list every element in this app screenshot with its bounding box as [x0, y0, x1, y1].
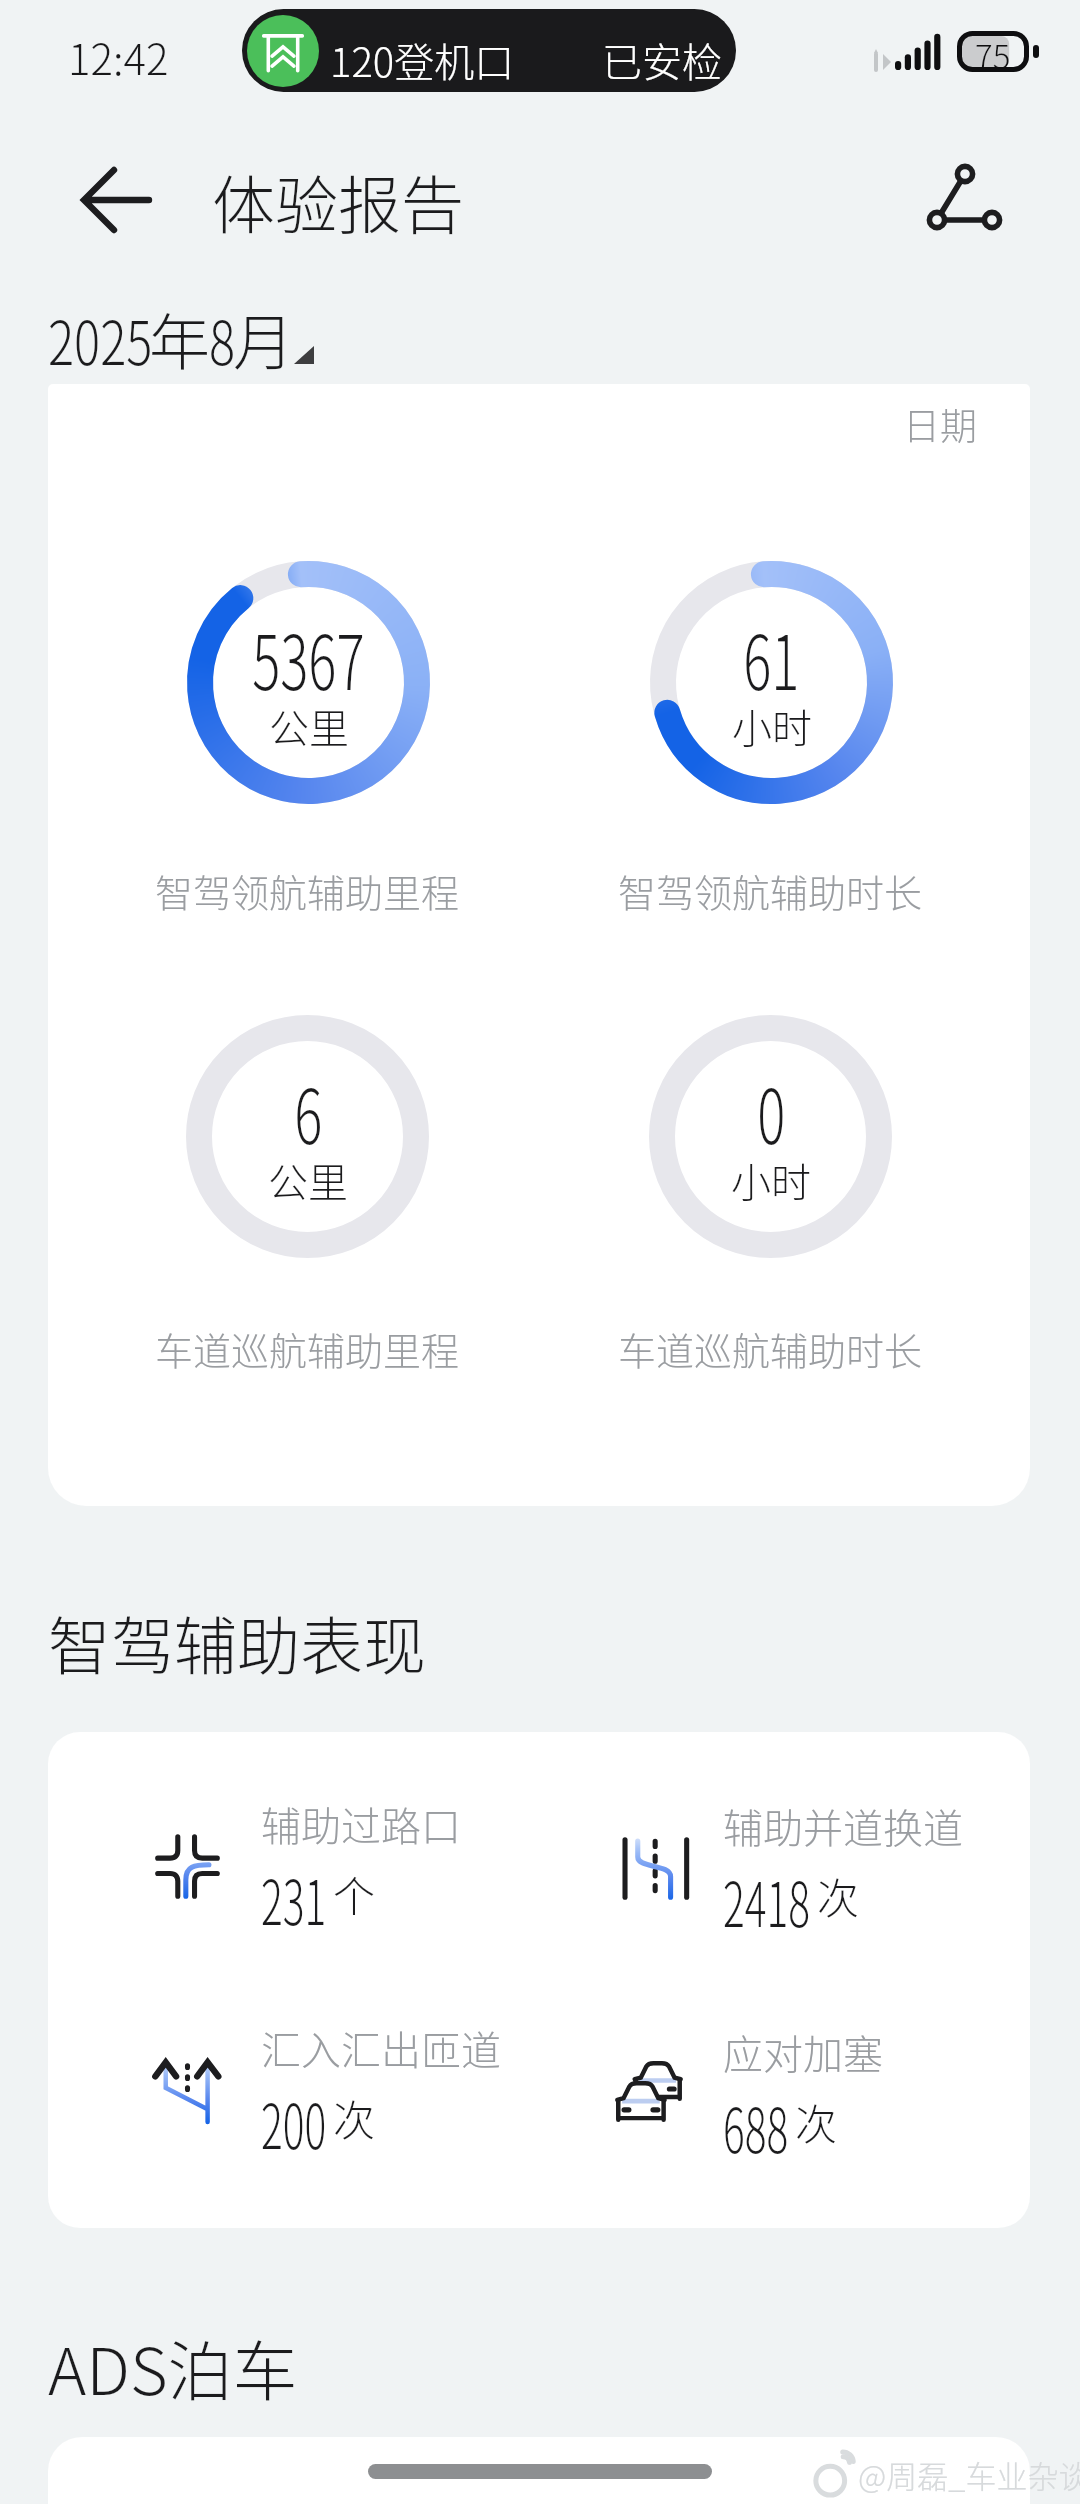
staticText: 8: [209, 294, 235, 372]
staticText: 次: [817, 1865, 860, 1926]
button[interactable]: Back: [26, 142, 146, 262]
staticText: 次: [333, 2087, 376, 2148]
staticText: 公里: [268, 1151, 348, 1209]
staticText: 已安检: [602, 31, 722, 89]
staticText: 12:42: [68, 26, 169, 87]
staticText: 体验报告: [212, 155, 464, 246]
staticText: 汇入汇出匝道: [261, 2019, 501, 2077]
staticText: 智驾领航辅助里程: [155, 863, 460, 918]
staticText: 公里: [269, 697, 349, 755]
button[interactable]: 2025: [48, 294, 356, 372]
staticText: 年: [149, 294, 211, 372]
staticText: 5367: [252, 603, 365, 712]
staticText: 智驾辅助表现: [48, 1596, 426, 1687]
staticText: 2418: [723, 1855, 810, 1945]
button[interactable]: Share: [905, 142, 1025, 262]
staticText: 辅助并道换道: [723, 1797, 963, 1855]
staticText: 2025: [48, 294, 153, 372]
staticText: @周磊_车业杂谈: [858, 2452, 1080, 2497]
staticText: 200: [261, 2077, 326, 2167]
staticText: 688: [723, 2081, 788, 2171]
staticText: 车道巡航辅助里程: [155, 1321, 460, 1376]
staticText: 120登机口: [330, 31, 515, 89]
staticText: 6: [294, 1057, 323, 1166]
staticText: 智驾领航辅助时长: [618, 863, 923, 918]
staticText: 61: [743, 603, 800, 712]
staticText: 小时: [731, 1151, 811, 1209]
staticText: 辅助过路口: [261, 1795, 461, 1853]
staticText: 月: [233, 294, 295, 372]
staticText: 车道巡航辅助时长: [618, 1321, 923, 1376]
staticText: 次: [795, 2091, 838, 2152]
staticText: 个: [333, 1863, 376, 1924]
staticText: 0: [757, 1057, 786, 1166]
staticText: 231: [261, 1853, 326, 1943]
staticText: 应对加塞: [723, 2023, 883, 2081]
staticText: 日期: [903, 397, 977, 451]
staticText: ADS泊车: [48, 2320, 298, 2414]
staticText: 75: [975, 31, 1011, 72]
staticText: 小时: [732, 697, 812, 755]
